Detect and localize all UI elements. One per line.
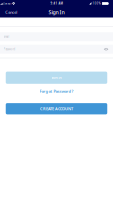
staticText: AT&T xyxy=(5,2,11,5)
staticText: SIGN IN xyxy=(51,76,61,79)
staticText: Sign In xyxy=(48,9,64,16)
staticText: Password xyxy=(4,47,16,51)
button[interactable]: SIGN IN xyxy=(6,72,107,84)
staticText: 9:41 AM xyxy=(50,2,62,5)
button[interactable]: Forgot Password? xyxy=(6,87,107,95)
staticText: CREATE ACCOUNT xyxy=(40,106,73,111)
button[interactable]: Cancel xyxy=(0,7,23,17)
button[interactable]: CREATE ACCOUNT xyxy=(6,103,107,114)
staticText: Email xyxy=(4,35,10,38)
staticText: Cancel xyxy=(5,10,17,15)
staticText: 100% xyxy=(93,2,101,5)
staticText: Forgot Password? xyxy=(39,89,73,94)
